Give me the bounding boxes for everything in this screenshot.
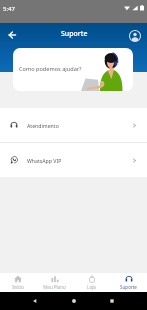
staticText: WhatsApp VIP	[27, 157, 62, 164]
staticText: Suporte	[120, 284, 137, 290]
button[interactable]: Meu Plano	[36, 273, 73, 292]
staticText: Loja	[87, 284, 96, 290]
staticText: Suporte	[61, 29, 88, 39]
button[interactable]: Back	[4, 27, 20, 43]
button[interactable]: Atendimento	[0, 108, 147, 142]
button[interactable]: WhatsApp VIP	[0, 143, 147, 177]
staticText: Início	[12, 284, 24, 290]
staticText: Como podemos ajudar?	[19, 65, 82, 73]
button[interactable]: Loja	[73, 273, 110, 292]
staticText: Meu Plano	[43, 284, 66, 290]
staticText: Atendimento	[27, 122, 59, 129]
button[interactable]: Início	[0, 273, 36, 292]
button[interactable]: Como podemos ajudar?	[13, 48, 133, 91]
staticText: 5:47	[3, 5, 15, 13]
button[interactable]: Suporte	[110, 273, 147, 292]
button[interactable]: Account	[127, 28, 143, 44]
